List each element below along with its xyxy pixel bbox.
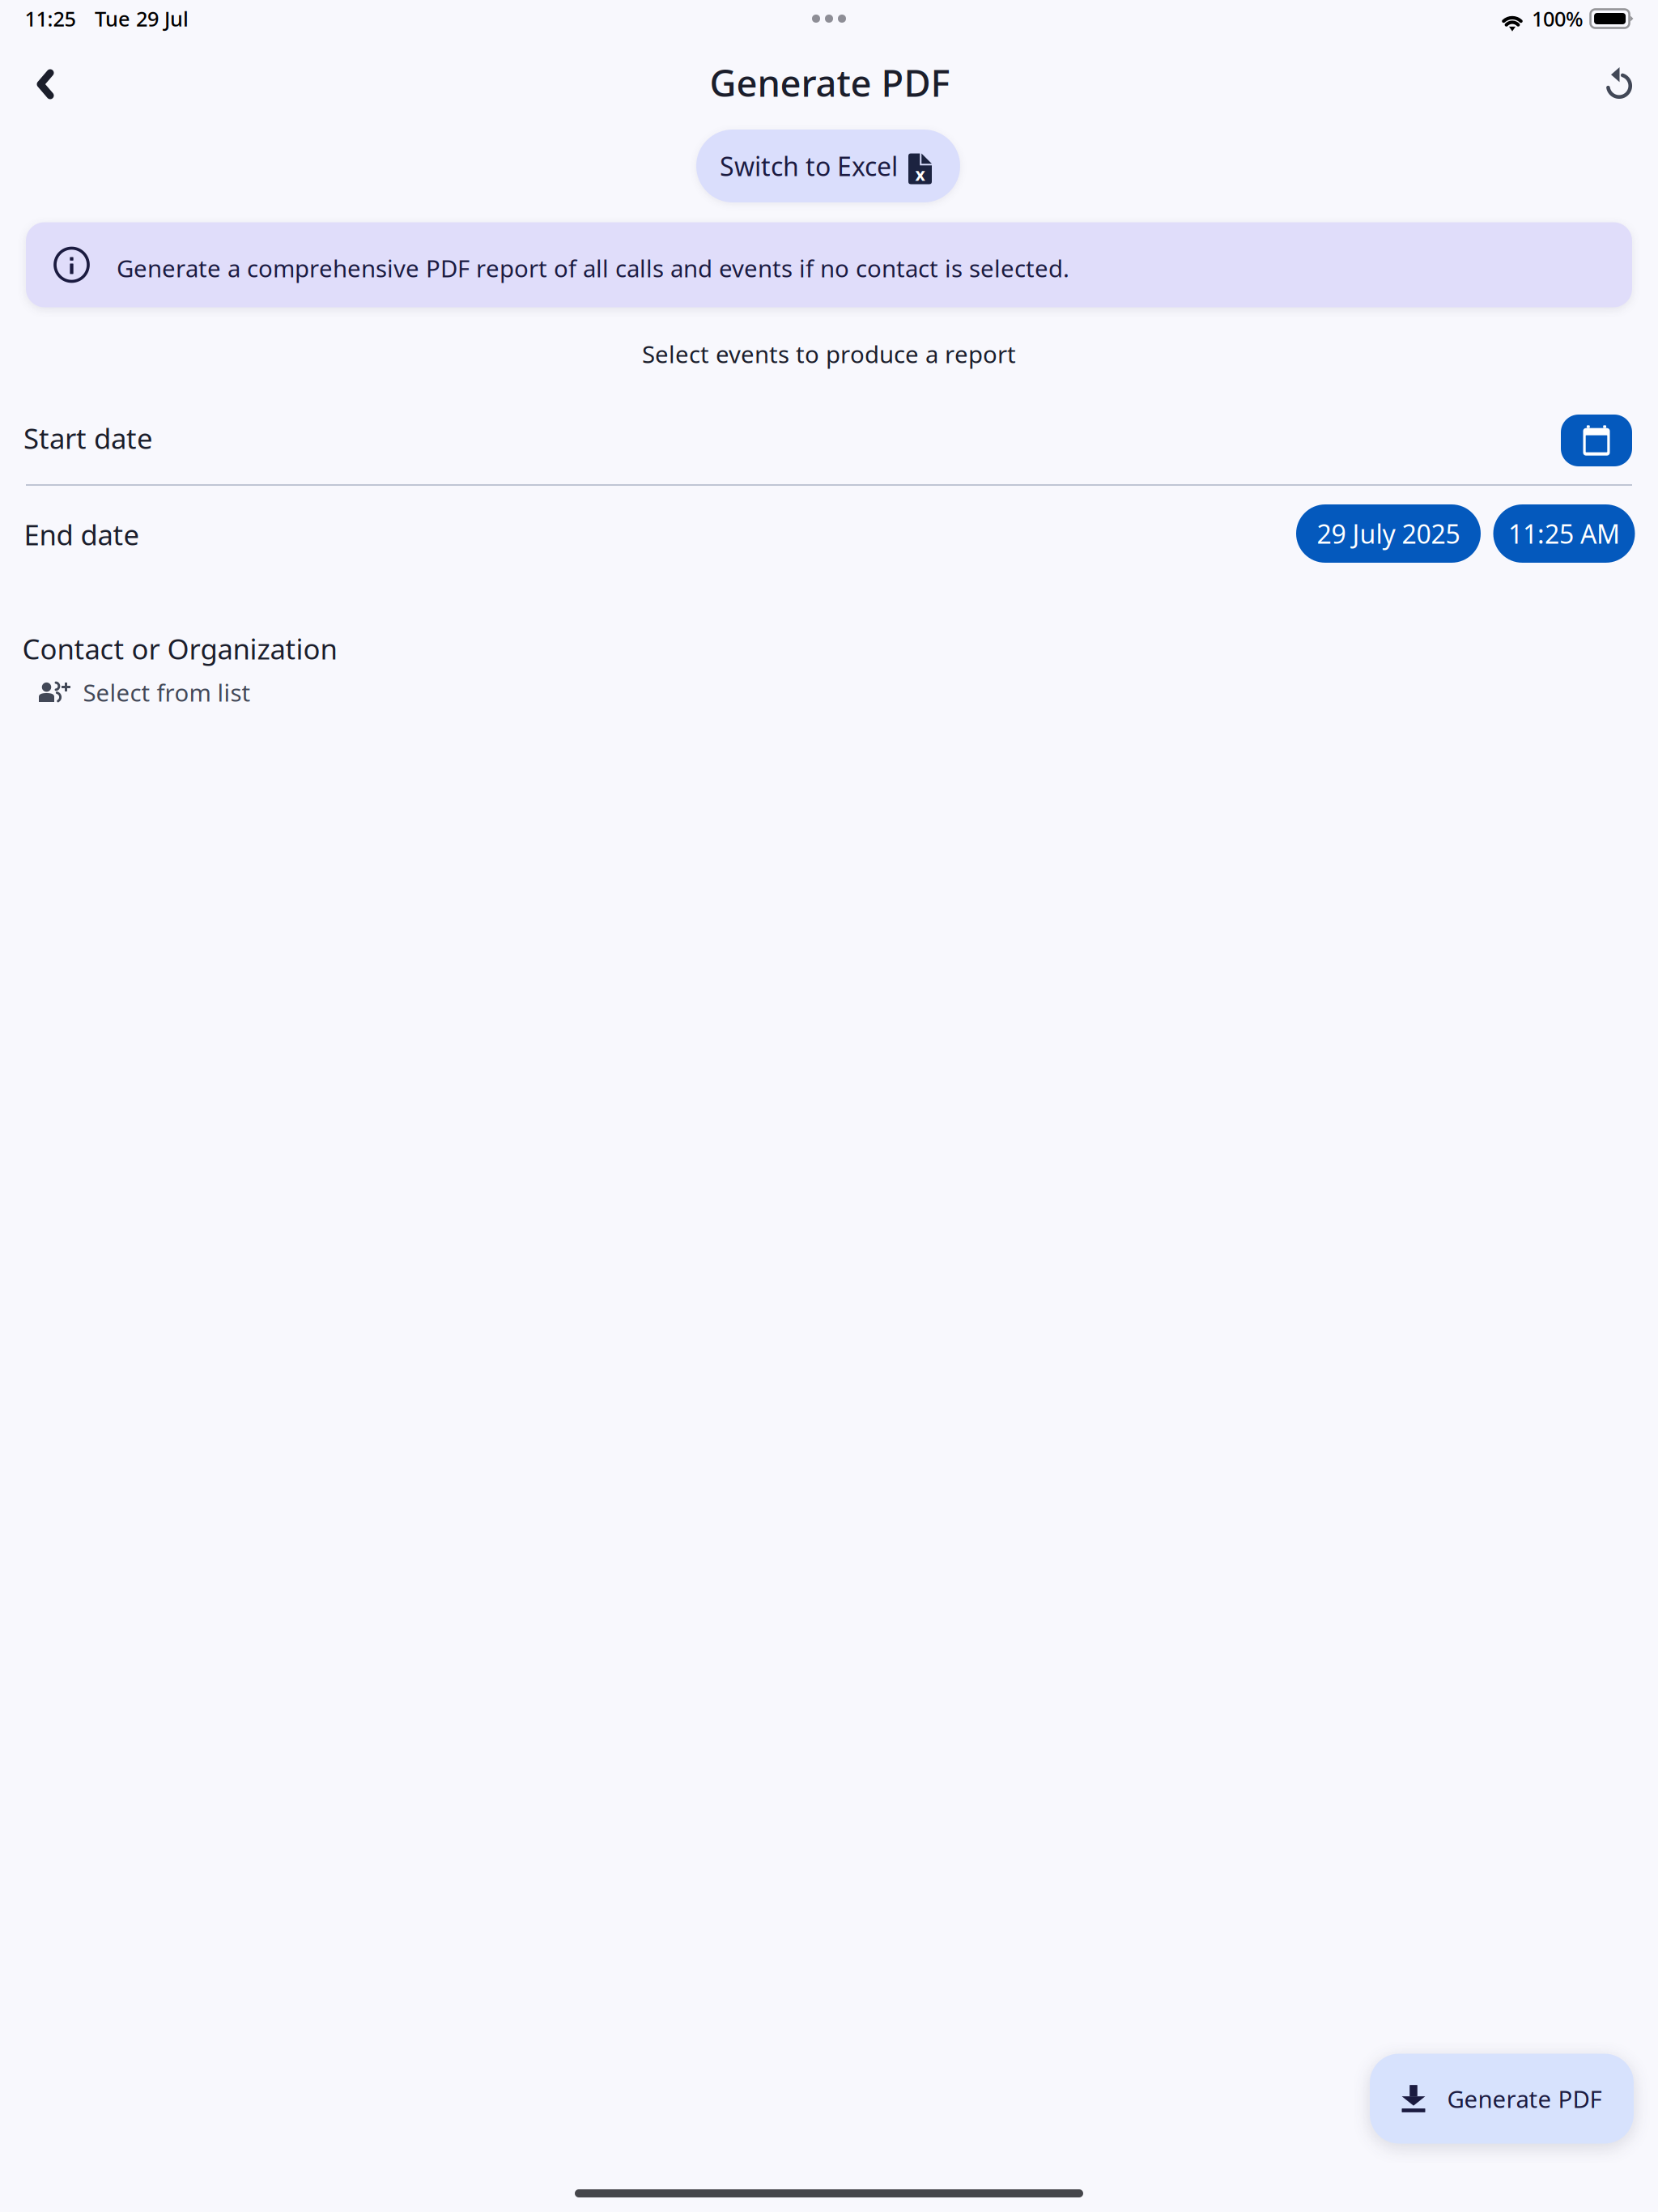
staticText: Generate PDF [710,58,950,107]
staticText: 100% [1532,5,1584,32]
staticText: Contact or Organization [22,630,337,667]
button[interactable]: Back [15,53,76,115]
button[interactable]: Pick start date [1561,415,1632,466]
staticText: 11:25 AM [1508,516,1620,551]
staticText: Start date [23,419,153,457]
staticText: Tue 29 Jul [95,5,189,32]
staticText: Select from list [83,676,251,708]
staticText: 29 July 2025 [1317,516,1460,551]
staticText: Generate a comprehensive PDF report of a… [117,252,1069,284]
staticText: 11:25 [25,5,76,32]
button[interactable]: Reset [1588,53,1650,114]
staticText: Switch to Excel [720,149,898,183]
button[interactable]: Generate PDF [1370,2054,1634,2144]
button[interactable]: Select from list [30,674,250,710]
button[interactable]: Switch to Excel [696,130,960,202]
staticText: End date [24,516,140,553]
staticText: Select events to produce a report [642,338,1016,370]
staticText: x [915,163,925,185]
staticText: Generate PDF [1447,2083,1602,2114]
button[interactable]: 11:25 AM [1493,504,1635,563]
button[interactable]: 29 July 2025 [1296,504,1481,563]
